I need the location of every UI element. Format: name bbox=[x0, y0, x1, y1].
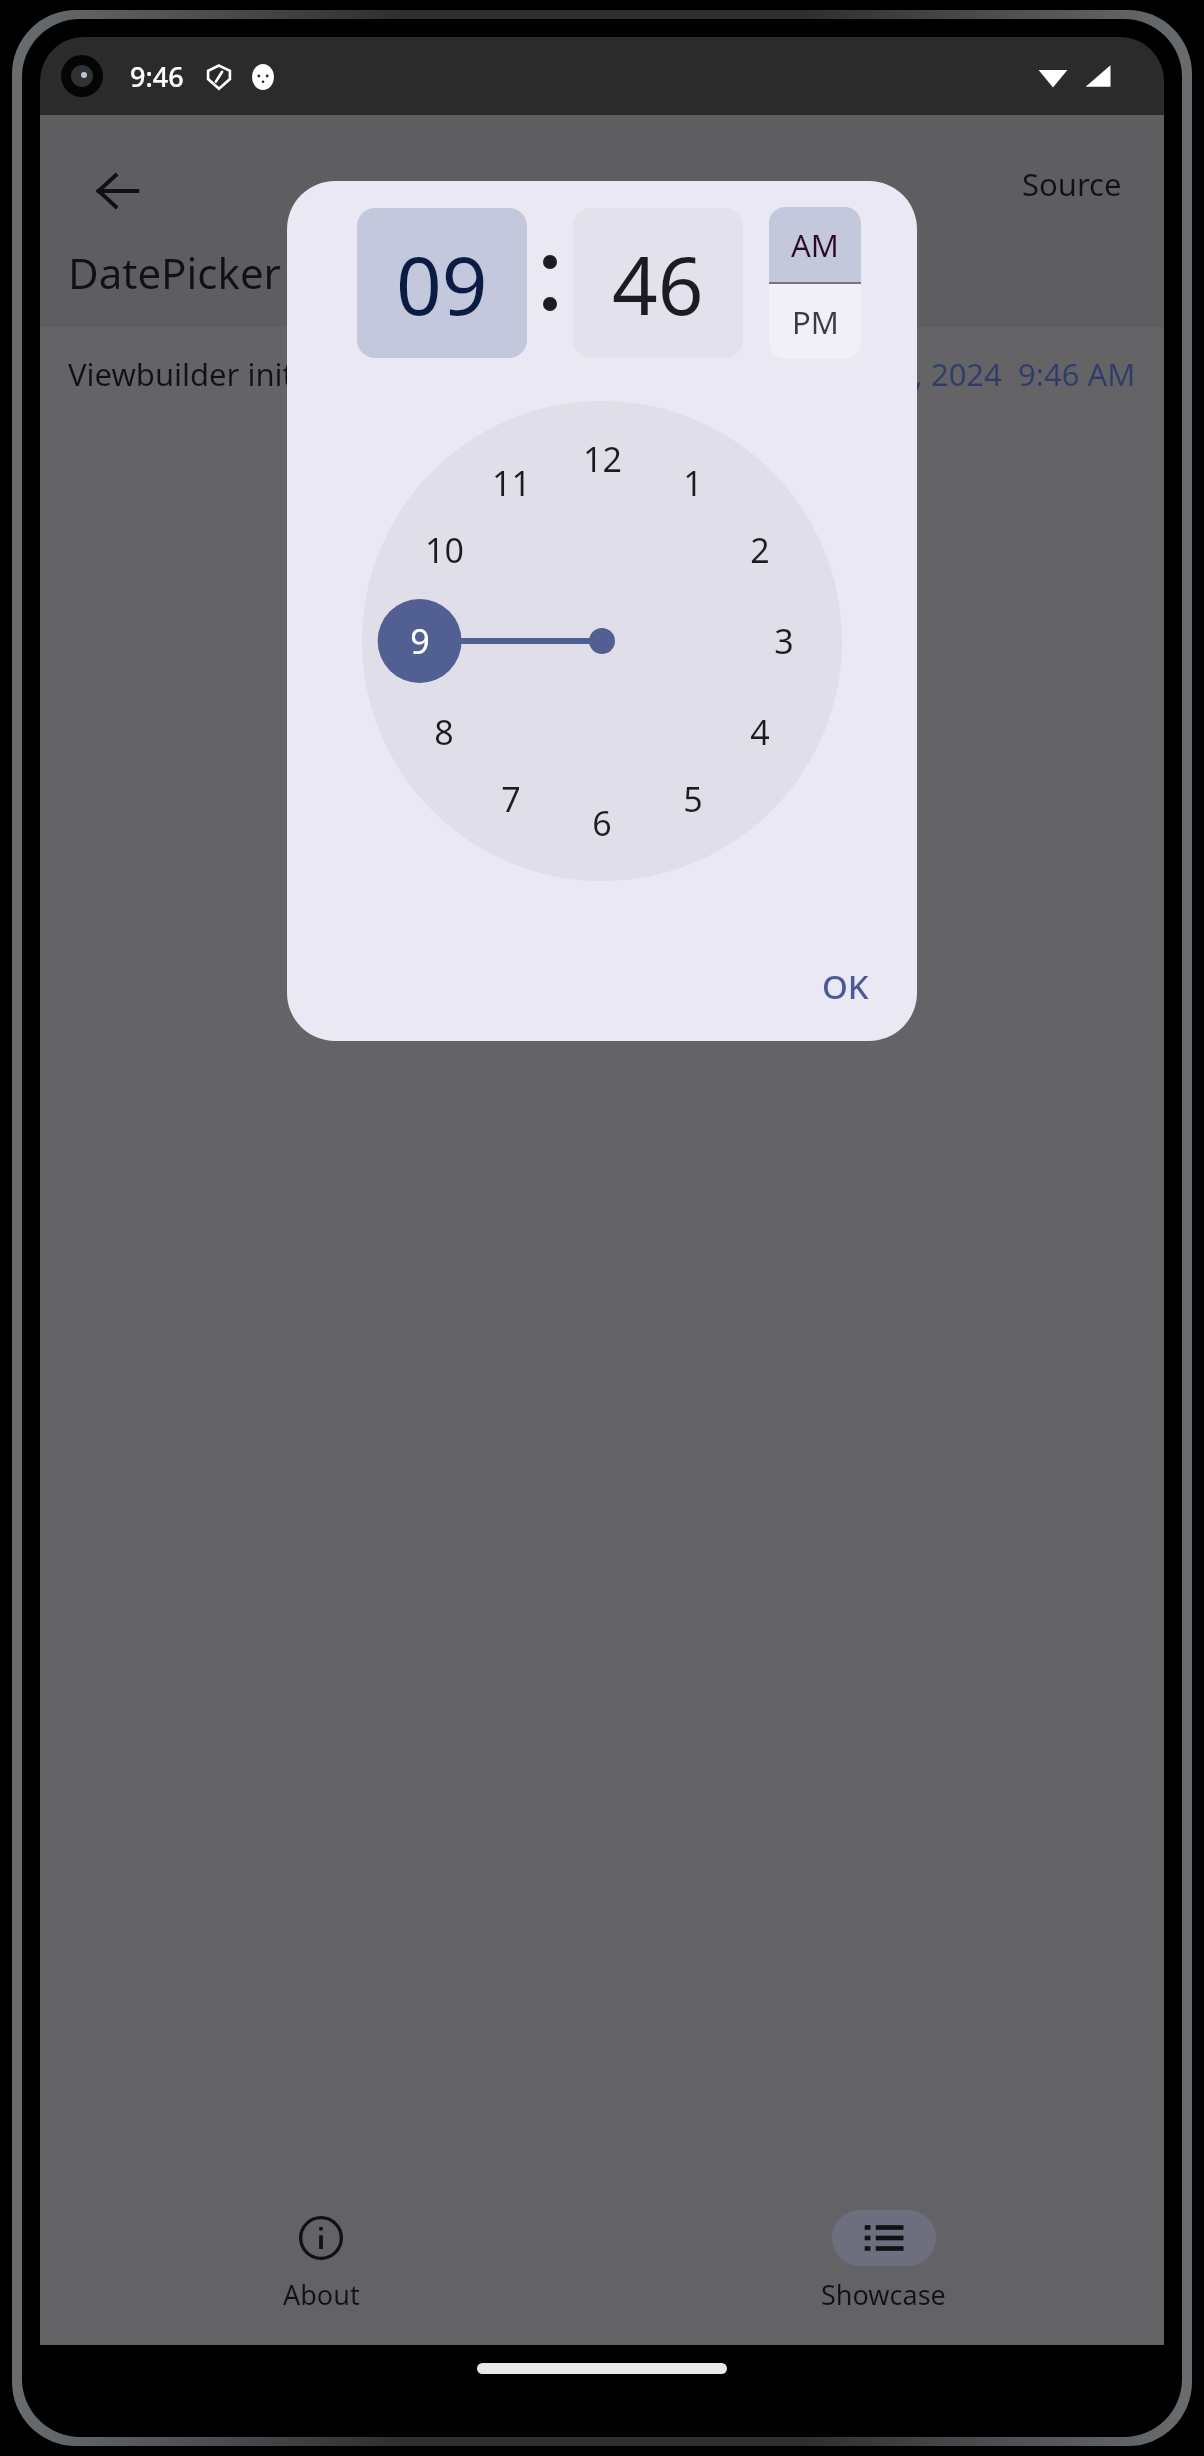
staticText: 5 bbox=[683, 776, 703, 822]
staticText: 09 bbox=[396, 229, 488, 338]
button[interactable]: 10 bbox=[410, 520, 478, 580]
button[interactable]: 9 bbox=[386, 611, 454, 671]
staticText: PM bbox=[792, 301, 839, 343]
button[interactable]: 5 bbox=[659, 769, 727, 829]
button[interactable]: 8 bbox=[410, 702, 478, 762]
staticText: 11 bbox=[492, 460, 531, 506]
button[interactable]: 4 bbox=[726, 702, 794, 762]
button[interactable]: About bbox=[40, 2177, 602, 2345]
button[interactable]: OK bbox=[800, 952, 891, 1021]
staticText: 8 bbox=[434, 709, 454, 755]
staticText: 3 bbox=[774, 618, 794, 664]
staticText: Source bbox=[1022, 163, 1122, 205]
staticText: Viewbuilder init bbox=[68, 353, 294, 395]
button[interactable]: Showcase bbox=[602, 2177, 1164, 2345]
staticText: 46 bbox=[612, 229, 704, 338]
staticText: OK bbox=[822, 964, 869, 1009]
button[interactable]: 46 bbox=[573, 208, 743, 358]
button[interactable]: AM bbox=[769, 207, 861, 282]
staticText: About bbox=[283, 2276, 360, 2313]
button[interactable]: 7 bbox=[477, 769, 545, 829]
button[interactable]: 6 bbox=[568, 793, 636, 853]
button[interactable]: 3 bbox=[750, 611, 818, 671]
button[interactable]: PM bbox=[769, 284, 861, 359]
staticText: Showcase bbox=[821, 2276, 946, 2313]
button[interactable]: 12 bbox=[568, 429, 636, 489]
staticText: AM bbox=[791, 224, 839, 266]
button[interactable]: 11 bbox=[477, 453, 545, 513]
button[interactable]: 09 bbox=[357, 208, 527, 358]
button[interactable]: Source bbox=[1006, 155, 1138, 213]
staticText: 7 bbox=[501, 776, 521, 822]
staticText: 4 bbox=[750, 709, 770, 755]
staticText: 10 bbox=[425, 527, 464, 573]
staticText: 12 bbox=[583, 436, 622, 482]
staticText: Jan 26, 2024 9:46 AM bbox=[826, 353, 1136, 395]
staticText: DatePicker bbox=[68, 244, 281, 301]
button[interactable]: Back bbox=[80, 153, 156, 229]
staticText: 9 bbox=[410, 618, 430, 664]
button[interactable]: 2 bbox=[726, 520, 794, 580]
button[interactable]: 1 bbox=[659, 453, 727, 513]
staticText: 6 bbox=[592, 800, 612, 846]
staticText: 2 bbox=[750, 527, 770, 573]
staticText: 9:46 bbox=[130, 58, 184, 95]
staticText: 1 bbox=[683, 460, 703, 506]
